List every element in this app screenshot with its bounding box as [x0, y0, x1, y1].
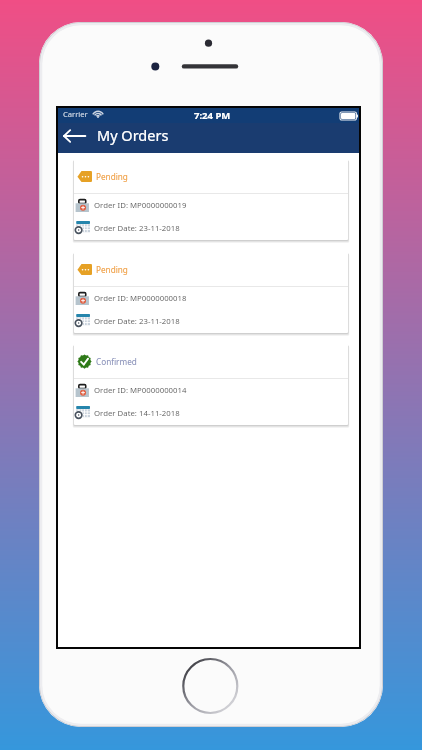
button[interactable]: Pending	[74, 159, 348, 240]
button[interactable]: Pending	[74, 252, 348, 333]
staticText: Pending	[96, 171, 128, 182]
staticText: Order Date: 23-11-2018	[94, 316, 180, 327]
staticText: Order Date: 14-11-2018	[94, 408, 180, 419]
staticText: My Orders	[97, 125, 169, 145]
staticText: Order ID: MP0000000014	[94, 385, 187, 396]
staticText: Carrier	[63, 109, 88, 119]
button[interactable]: Back	[58, 120, 91, 150]
staticText: Order ID: MP0000000019	[94, 200, 187, 211]
staticText: Pending	[96, 264, 128, 275]
button[interactable]: Confirmed	[74, 344, 348, 425]
staticText: 7:24 PM	[194, 109, 231, 122]
staticText: Order Date: 23-11-2018	[94, 223, 180, 234]
staticText: Confirmed	[96, 356, 137, 367]
staticText: Order ID: MP0000000018	[94, 293, 187, 304]
